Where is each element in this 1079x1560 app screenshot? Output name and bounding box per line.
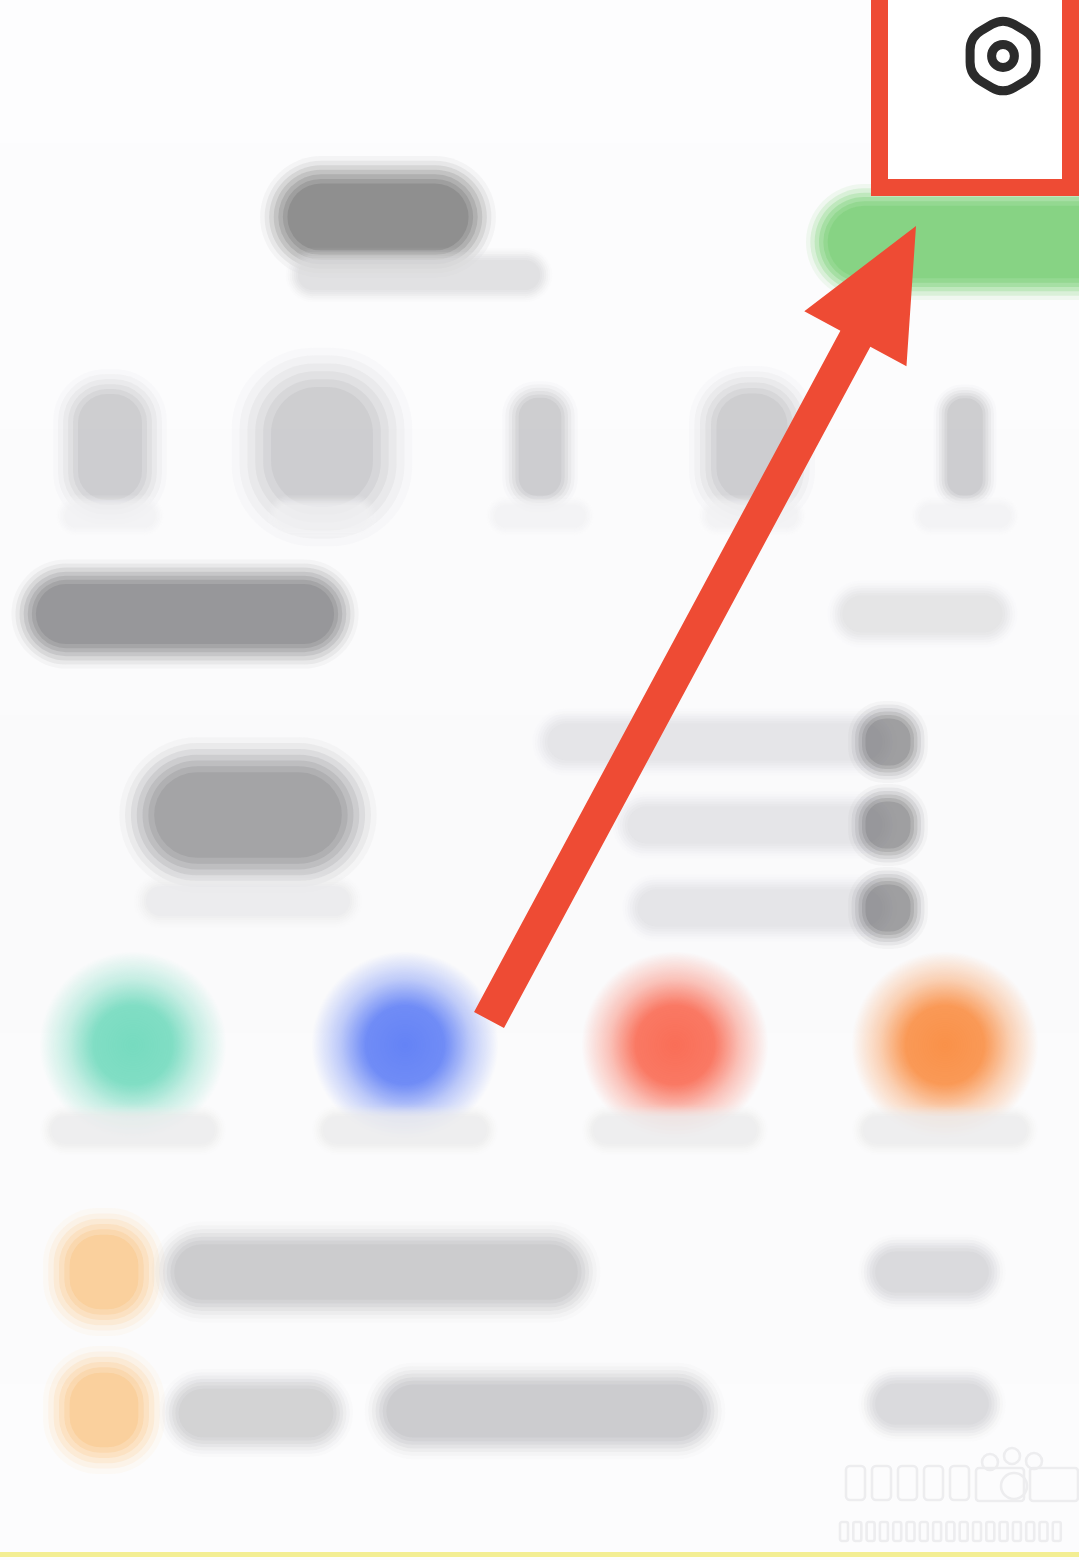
- button[interactable]: Settings: [0, 0, 1079, 1560]
